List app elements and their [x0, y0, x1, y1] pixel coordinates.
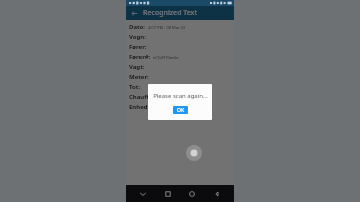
staticText: Vogn: [129, 33, 146, 41]
staticText: Chauffør: [129, 93, 157, 101]
staticText: OK [177, 107, 185, 114]
button[interactable]: Vagt: [129, 62, 234, 72]
button[interactable]: Back [210, 187, 224, 201]
button[interactable]: Dato: [129, 22, 234, 32]
staticText: Vagt: [129, 63, 145, 71]
button[interactable]: OK [173, 106, 188, 114]
staticText: Dato: [129, 23, 146, 31]
staticText: Please scan again... [153, 92, 208, 100]
staticText: Fører: [129, 43, 147, 51]
button[interactable]: Chauffør: [129, 92, 234, 102]
staticText: eCG4970ankz [153, 55, 179, 60]
button[interactable]: Enhed: [129, 102, 234, 112]
staticText: Fører#: [129, 53, 151, 61]
staticText: Recognized Text [143, 8, 198, 18]
staticText: Enhed: [129, 103, 150, 111]
button[interactable]: Recent apps [161, 187, 175, 201]
button[interactable]: Vogn: [129, 32, 234, 42]
staticText: Meter: [129, 73, 149, 81]
button[interactable]: Fører#: [129, 52, 234, 62]
button[interactable]: Meter: [129, 72, 234, 82]
button[interactable]: Hide keyboard [136, 187, 150, 201]
staticText: Tot: [129, 83, 141, 91]
button[interactable]: Home [185, 187, 199, 201]
button[interactable]: Back [129, 8, 140, 19]
button[interactable]: Fører: [129, 42, 234, 52]
staticText: 4:07 PM - 08 Mar 23 [148, 25, 186, 30]
button[interactable]: Tot: [129, 82, 234, 92]
